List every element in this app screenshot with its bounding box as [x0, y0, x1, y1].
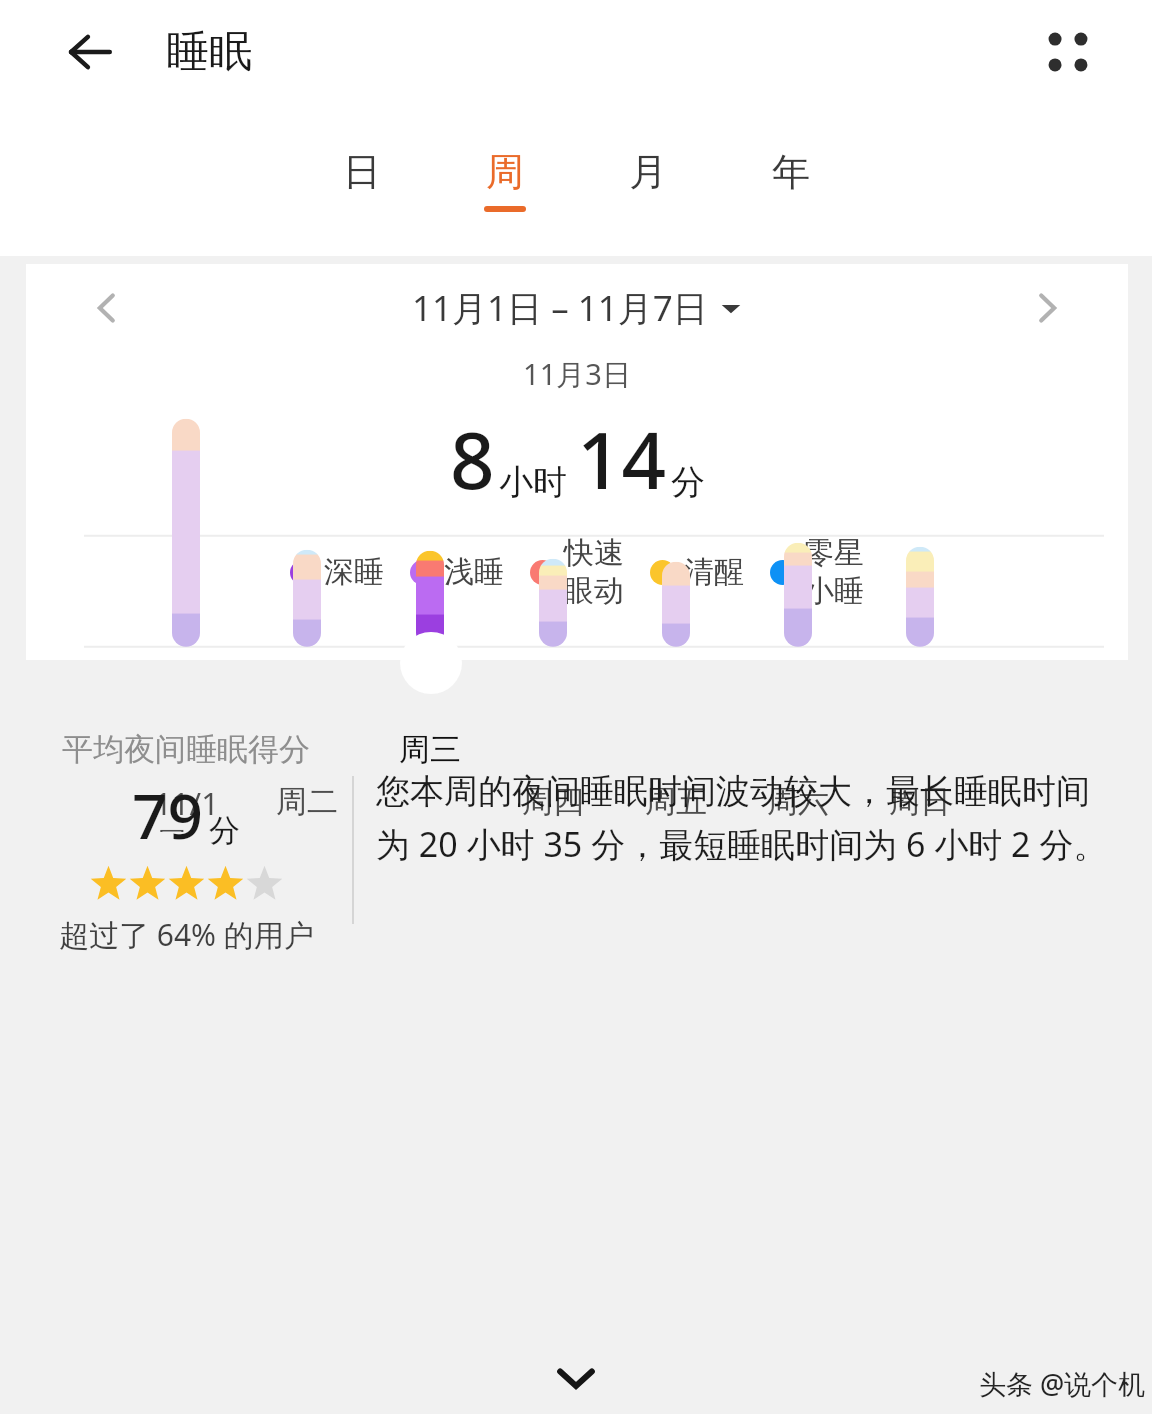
button[interactable]: 周日	[865, 782, 975, 821]
staticText: 深睡	[324, 553, 384, 591]
staticText: 清醒	[684, 553, 744, 591]
button[interactable]: 日	[290, 148, 433, 234]
staticText: 周二	[276, 782, 338, 821]
button[interactable]: Back	[56, 18, 124, 86]
button[interactable]: More options	[1032, 16, 1104, 88]
staticText: 平均夜间睡眠得分	[62, 730, 310, 769]
staticText: 周	[486, 148, 524, 196]
button[interactable]: 周三	[375, 730, 485, 769]
button[interactable]: 周五	[621, 782, 731, 821]
staticText: 分	[671, 461, 705, 504]
staticText: 睡眠	[166, 25, 252, 79]
staticText: 周五	[645, 782, 707, 821]
staticText: 日	[343, 148, 381, 196]
staticText: 周四	[522, 782, 584, 821]
button[interactable]: 周四	[498, 782, 608, 821]
button[interactable]: 年	[719, 148, 862, 234]
staticText: 年	[772, 148, 810, 196]
button[interactable]: Previous week	[78, 279, 136, 337]
button[interactable]: 周二	[252, 782, 362, 821]
staticText: 周三	[399, 730, 461, 769]
staticText: 11月3日	[26, 354, 1128, 394]
button[interactable]: 周六	[743, 782, 853, 821]
button[interactable]: Expand	[544, 1346, 608, 1410]
staticText: 您本周的夜间睡眠时间波动较大，最长睡眠时间为 20 小时 35 分，最短睡眠时间…	[376, 770, 1116, 867]
staticText: 14	[577, 406, 667, 512]
staticText: 眼动	[564, 572, 624, 610]
staticText: 小时	[499, 461, 567, 504]
staticText: 79	[132, 773, 203, 857]
staticText: 零星	[804, 534, 864, 572]
staticText: 小睡	[804, 572, 864, 610]
button[interactable]: 周	[433, 148, 576, 234]
staticText: 浅睡	[444, 553, 504, 591]
button[interactable]: Next week	[1018, 279, 1076, 337]
staticText: 头条 @说个机	[979, 1365, 1146, 1402]
button[interactable]: 月	[576, 148, 719, 234]
staticText: 分	[209, 811, 240, 850]
staticText: 周日	[889, 782, 951, 821]
button[interactable]: 11/1 周一	[131, 782, 241, 832]
staticText: 11/1 周一	[154, 782, 219, 832]
staticText: 快速	[564, 534, 624, 572]
staticText: 8	[450, 406, 495, 512]
staticText: 超过了 64% 的用户	[59, 914, 314, 955]
staticText: 月	[629, 148, 667, 196]
staticText: 11月1日 – 11月7日	[412, 284, 708, 332]
staticText: 周六	[767, 782, 829, 821]
